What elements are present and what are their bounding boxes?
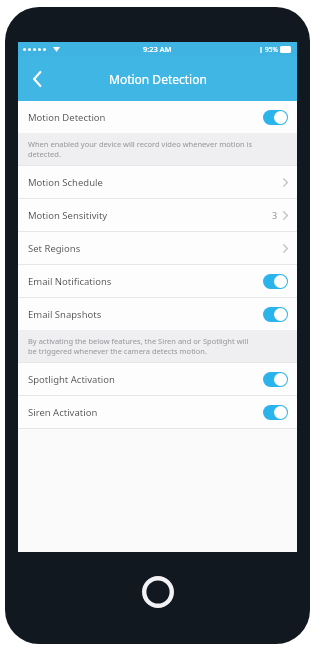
staticText: Motion Schedule <box>28 176 283 189</box>
staticText: Motion Detection <box>109 71 207 87</box>
button[interactable]: Back <box>22 62 52 96</box>
staticText: Email Notifications <box>28 275 263 288</box>
button[interactable]: Home <box>140 574 176 610</box>
staticText: Set Regions <box>28 242 283 255</box>
button[interactable]: Siren Activation <box>18 396 297 428</box>
staticText: Motion Detection <box>28 111 263 124</box>
button[interactable]: Toggle <box>263 307 288 322</box>
staticText: 95% <box>265 45 278 54</box>
button[interactable]: Toggle <box>263 372 288 387</box>
staticText: By activating the below features, the Si… <box>28 336 249 356</box>
staticText: 9:23 AM <box>143 44 172 54</box>
button[interactable]: Motion Schedule <box>18 166 297 198</box>
staticText: Email Snapshots <box>28 308 263 321</box>
button[interactable]: Spotlight Activation <box>18 363 297 395</box>
staticText: Motion Sensitivity <box>28 209 272 222</box>
button[interactable]: Toggle <box>263 405 288 420</box>
button[interactable]: Motion Detection <box>18 101 297 133</box>
button[interactable]: Email Notifications <box>18 265 297 297</box>
staticText: When enabled your device will record vid… <box>28 139 253 159</box>
staticText: Siren Activation <box>28 406 263 419</box>
button[interactable]: Set Regions <box>18 232 297 264</box>
staticText: Spotlight Activation <box>28 373 263 386</box>
button[interactable]: Toggle <box>263 110 288 125</box>
button[interactable]: Toggle <box>263 274 288 289</box>
button[interactable]: Email Snapshots <box>18 298 297 330</box>
staticText: 3 <box>272 209 278 221</box>
button[interactable]: Motion Sensitivity <box>18 199 297 231</box>
